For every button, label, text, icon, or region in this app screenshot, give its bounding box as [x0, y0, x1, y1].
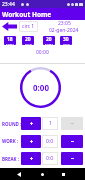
button[interactable]: Back [0, 20, 18, 33]
staticText: 20 [25, 36, 31, 43]
staticText: WORK : [2, 138, 19, 144]
button[interactable]: 20 [22, 36, 34, 45]
button[interactable]: Decrease ROUND : [61, 117, 83, 130]
button[interactable]: Increase BREAK : [21, 152, 41, 165]
staticText: MIN [45, 43, 54, 45]
staticText: 20 [46, 36, 52, 43]
staticText: 30 [63, 36, 69, 43]
button[interactable]: 18 [4, 36, 16, 45]
button[interactable]: 20 [43, 36, 55, 45]
button[interactable]: Back [13, 168, 25, 180]
staticText: ROUND : [2, 121, 22, 127]
staticText: circ 1 [22, 23, 35, 30]
button[interactable]: circ 1 [19, 21, 38, 32]
staticText: BREAK : [2, 156, 20, 162]
staticText: SEC [25, 43, 32, 45]
staticText: 02-gen-2024 [49, 27, 79, 33]
button[interactable]: Increase WORK : [21, 135, 41, 148]
staticText: 0:00 [33, 82, 49, 93]
button[interactable]: Decrease BREAK : [61, 152, 83, 165]
button[interactable]: Recent apps [57, 168, 69, 180]
staticText: Workout Home [2, 10, 52, 19]
button[interactable]: Home [36, 168, 48, 180]
staticText: 0:0 [46, 138, 54, 145]
staticText: MIN [6, 43, 15, 45]
staticText: 18 [7, 36, 13, 43]
button[interactable]: Increase ROUND : [21, 117, 41, 130]
staticText: 00:00 [36, 49, 49, 56]
staticText: 23:44 [2, 1, 15, 8]
staticText: 23:05 [58, 20, 71, 27]
staticText: SEC [63, 43, 70, 45]
button[interactable]: 30 [60, 36, 72, 45]
button[interactable]: Decrease WORK : [61, 135, 83, 148]
staticText: 1 [49, 120, 52, 127]
staticText: 0:0 [46, 155, 54, 162]
